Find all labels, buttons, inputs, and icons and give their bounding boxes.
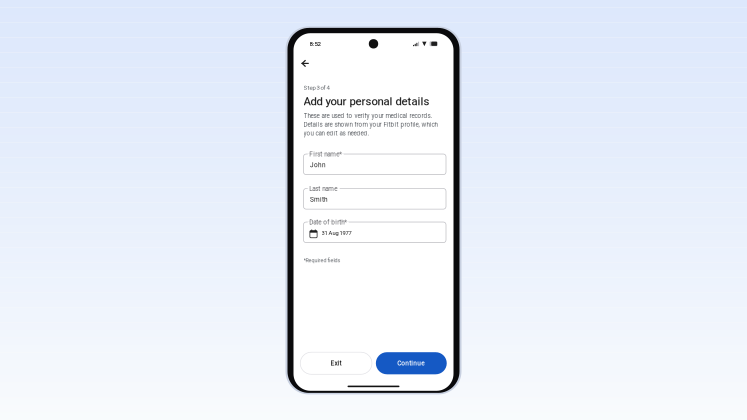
staticText: Last name: [309, 185, 337, 192]
staticText: These are used to verify your medical re…: [303, 112, 432, 119]
staticText: John: [310, 161, 326, 169]
staticText: you can edit as needed.: [303, 130, 369, 137]
staticText: Details are shown from your Fitbit profi…: [303, 121, 437, 128]
staticText: First name*: [309, 150, 342, 158]
staticText: Date of birth*: [309, 218, 347, 226]
button[interactable]: Back: [293, 54, 453, 72]
staticText: Smith: [310, 196, 328, 203]
staticText: *Required fields: [303, 257, 340, 263]
staticText: Exit: [331, 359, 342, 367]
button[interactable]: Continue: [376, 352, 447, 374]
staticText: Add your personal details: [303, 95, 429, 108]
button[interactable]: Exit: [300, 352, 372, 374]
staticText: 8:52: [309, 40, 320, 47]
staticText: Continue: [397, 359, 425, 367]
staticText: Step 3 of 4: [303, 84, 329, 91]
staticText: 31 Aug 1977: [322, 230, 352, 236]
